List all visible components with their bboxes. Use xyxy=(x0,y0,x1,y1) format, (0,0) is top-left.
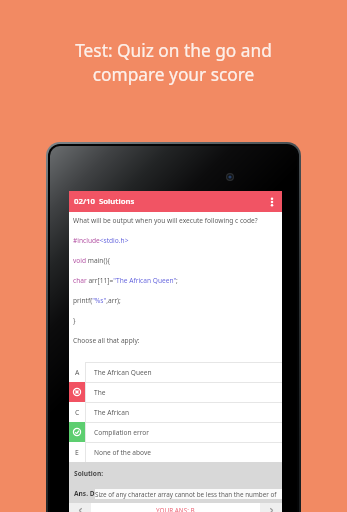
button[interactable]: Compilation error xyxy=(69,422,282,442)
button[interactable]: 02/10 Solutions xyxy=(69,191,282,212)
staticText: void main(){ xyxy=(73,256,110,265)
button[interactable]: Previous question xyxy=(69,503,91,512)
staticText: The African Queen xyxy=(94,368,152,377)
button[interactable]: The xyxy=(69,382,282,402)
staticText: Choose all that apply: xyxy=(73,336,140,345)
staticText: 02/10 Solutions xyxy=(74,196,135,207)
staticText: The African xyxy=(94,408,130,417)
staticText: YOUR ANS: B xyxy=(156,506,195,512)
staticText: char arr[11]="The African Queen"; xyxy=(73,276,178,285)
staticText: Size of any character array cannot be le… xyxy=(95,490,277,499)
staticText: Test: Quiz on the go and compare your sc… xyxy=(75,39,272,87)
staticText: What will be output when you will execut… xyxy=(73,216,258,225)
staticText: The xyxy=(94,388,106,397)
staticText: A xyxy=(75,368,80,377)
button[interactable]: Next question xyxy=(260,503,282,512)
staticText: None of the above xyxy=(94,448,152,457)
button[interactable]: YOUR ANS: B xyxy=(91,503,260,512)
staticText: Compilation error xyxy=(94,428,150,437)
button[interactable]: More options xyxy=(265,195,279,209)
staticText: Solution: xyxy=(74,469,104,478)
button[interactable]: A xyxy=(69,362,282,382)
staticText: Ans. D xyxy=(74,489,95,498)
staticText: #include<stdio.h> xyxy=(73,236,129,245)
staticText: C xyxy=(75,408,80,417)
button[interactable]: C xyxy=(69,402,282,422)
staticText: } xyxy=(73,316,76,325)
staticText: E xyxy=(75,448,79,457)
staticText: printf("%s",arr); xyxy=(73,296,121,305)
button[interactable]: E xyxy=(69,442,282,462)
